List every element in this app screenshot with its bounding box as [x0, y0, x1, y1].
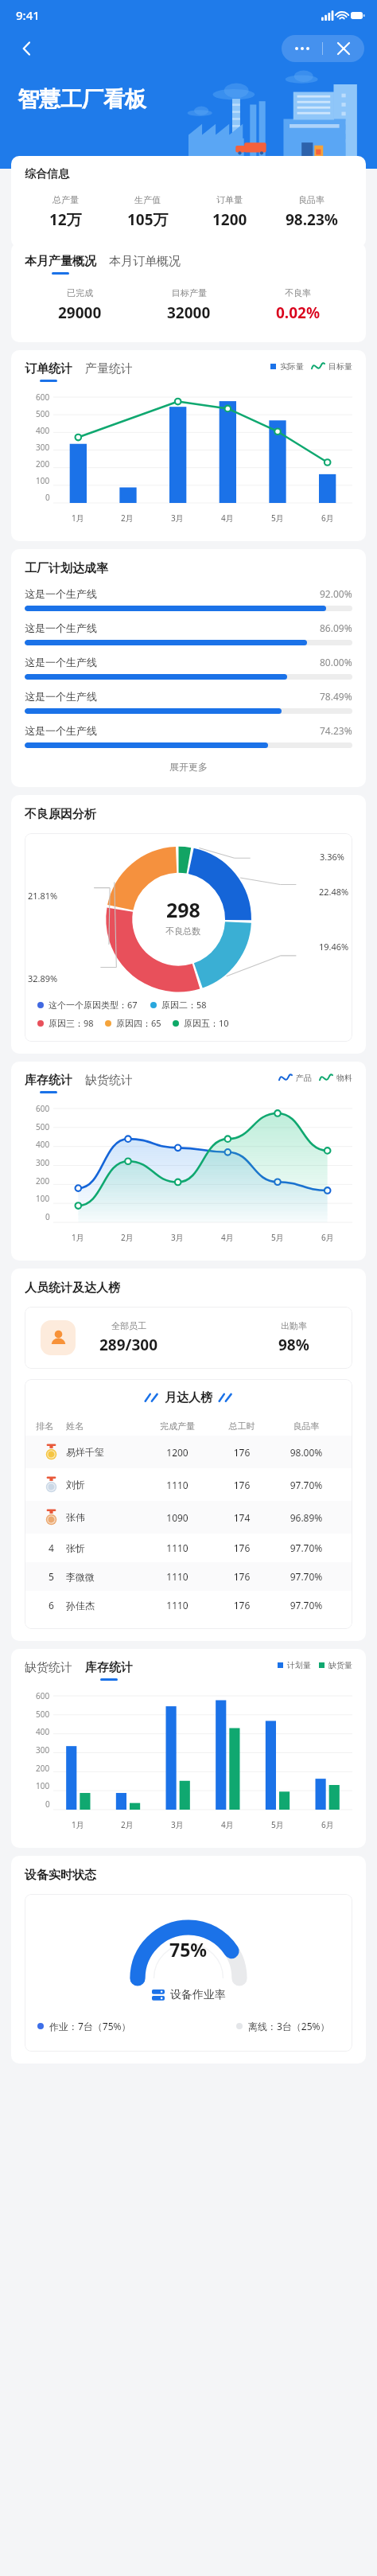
staticText: 实际量	[280, 361, 304, 372]
staticText: 74.23%	[320, 724, 352, 737]
staticText: 9:41	[16, 7, 40, 23]
staticText: 4月	[221, 512, 234, 524]
button[interactable]: More options	[282, 35, 322, 62]
button[interactable]: 5	[25, 1562, 352, 1591]
staticText: 176	[212, 1479, 271, 1491]
button[interactable]: 本月产量概况	[25, 254, 109, 275]
staticText: 174	[212, 1511, 271, 1524]
staticText: 80.00%	[320, 656, 352, 668]
staticText: 78.49%	[320, 690, 352, 703]
button[interactable]: 设备作业率	[152, 1988, 226, 2002]
staticText: 1200	[212, 209, 247, 230]
button[interactable]: Close	[323, 35, 364, 62]
staticText: 生产值	[134, 194, 161, 205]
staticText: 库存统计	[25, 1073, 72, 1088]
staticText: 19.46%	[319, 941, 349, 953]
staticText: 6月	[321, 512, 334, 524]
button[interactable]: 刘忻	[25, 1468, 352, 1501]
button[interactable]: Back	[13, 34, 41, 63]
staticText: 张伟	[66, 1511, 142, 1523]
staticText: 289/300	[99, 1335, 158, 1355]
staticText: 32.89%	[28, 972, 58, 984]
staticText: 200	[36, 1175, 50, 1187]
staticText: 98.00%	[271, 1446, 341, 1459]
staticText: 176	[212, 1599, 271, 1611]
staticText: 孙佳杰	[66, 1600, 142, 1611]
button[interactable]: 本月订单概况	[109, 254, 193, 275]
button[interactable]: 4	[25, 1534, 352, 1562]
staticText: 1110	[142, 1541, 212, 1554]
button[interactable]: 订单统计	[25, 361, 85, 382]
staticText: 32000	[167, 302, 211, 323]
staticText: 本月产量概况	[25, 254, 96, 269]
staticText: 29000	[58, 302, 102, 323]
staticText: 总产量	[52, 194, 79, 205]
staticText: 500	[36, 1121, 50, 1132]
button[interactable]: 张伟	[25, 1501, 352, 1534]
staticText: 500	[36, 408, 50, 419]
staticText: 21.81%	[28, 890, 58, 902]
staticText: 5月	[271, 1819, 284, 1830]
staticText: 计划量	[287, 1660, 311, 1670]
staticText: 订单量	[216, 194, 243, 205]
staticText: 作业：7台（75%）	[49, 2020, 131, 2032]
staticText: 原因五：10	[184, 1017, 229, 1029]
staticText: 22.48%	[319, 886, 349, 898]
staticText: 这是一个生产线	[25, 724, 97, 737]
staticText: 96.89%	[271, 1511, 341, 1524]
button[interactable]: 缺货统计	[25, 1660, 85, 1681]
staticText: 1110	[142, 1479, 212, 1491]
staticText: 97.70%	[271, 1599, 341, 1611]
staticText: 0	[45, 1211, 50, 1222]
staticText: 298	[166, 896, 200, 923]
staticText: 不良原因分析	[25, 807, 96, 822]
staticText: 176	[212, 1570, 271, 1583]
staticText: 0	[45, 492, 50, 503]
staticText: 展开更多	[169, 761, 208, 773]
staticText: 4月	[221, 1232, 234, 1243]
button[interactable]: 易烊千玺	[25, 1436, 352, 1468]
button[interactable]: 展开更多	[25, 758, 352, 775]
staticText: 300	[36, 1744, 50, 1756]
staticText: 600	[36, 1690, 50, 1701]
staticText: 不良率	[285, 287, 311, 298]
staticText: 目标产量	[172, 287, 207, 298]
staticText: 6月	[321, 1819, 334, 1830]
staticText: 97.70%	[271, 1541, 341, 1554]
staticText: 李微微	[66, 1571, 142, 1583]
staticText: 5	[49, 1570, 54, 1583]
staticText: 离线：3台（25%）	[248, 2020, 330, 2032]
staticText: 良品率	[271, 1421, 341, 1432]
button[interactable]: 缺货统计	[85, 1073, 146, 1093]
staticText: 出勤率	[281, 1320, 307, 1331]
staticText: 总工时	[212, 1421, 271, 1432]
staticText: 0	[45, 1799, 50, 1810]
staticText: 500	[36, 1709, 50, 1720]
staticText: 全部员工	[111, 1320, 146, 1331]
staticText: 3.36%	[320, 851, 344, 863]
staticText: 原因二：58	[161, 999, 207, 1011]
button[interactable]: 产量统计	[85, 361, 146, 382]
staticText: 1月	[72, 1819, 84, 1830]
staticText: 75%	[169, 1937, 208, 1962]
staticText: 400	[36, 1139, 50, 1150]
staticText: 原因四：65	[116, 1017, 161, 1029]
staticText: 200	[36, 458, 50, 470]
staticText: 1月	[72, 1232, 84, 1243]
staticText: 200	[36, 1763, 50, 1774]
button[interactable]: 6	[25, 1591, 352, 1619]
staticText: 2月	[121, 1819, 134, 1830]
button[interactable]: 库存统计	[25, 1073, 85, 1093]
staticText: 这个一个原因类型：67	[49, 999, 138, 1011]
staticText: 易烊千玺	[66, 1446, 142, 1458]
staticText: 3月	[171, 1232, 184, 1243]
staticText: 月达人榜	[165, 1390, 212, 1405]
staticText: 5月	[271, 512, 284, 524]
staticText: 92.00%	[320, 587, 352, 600]
staticText: 400	[36, 425, 50, 436]
staticText: 100	[36, 1780, 50, 1791]
staticText: 105万	[127, 209, 169, 230]
button[interactable]: 库存统计	[85, 1660, 146, 1681]
staticText: 4	[49, 1541, 54, 1554]
staticText: 2月	[121, 1232, 134, 1243]
